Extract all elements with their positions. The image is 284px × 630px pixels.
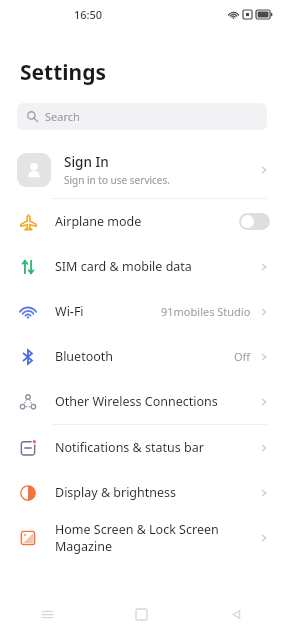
staticText: Airplane mode [55,213,239,230]
staticText: Settings [20,58,107,87]
staticText: Sign In [64,153,109,171]
button[interactable]: SIM card & mobile data [0,244,284,289]
button[interactable]: Other Wireless Connections [0,379,284,424]
button[interactable]: Notifications & status bar [0,425,284,470]
staticText: 91mobiles Studio [161,304,251,319]
staticText: Sign in to use services. [64,173,170,187]
staticText: Wi-Fi [55,303,161,320]
button[interactable]: Search [17,103,267,130]
staticText: Search [45,109,80,124]
staticText: SIM card & mobile data [55,258,258,275]
button[interactable]: Home [94,598,189,630]
button[interactable]: Airplane mode toggle [239,213,270,230]
button[interactable]: Airplane mode [0,199,284,244]
button[interactable]: Wi-Fi [0,289,284,334]
staticText: Home Screen & Lock Screen Magazine [55,521,258,554]
staticText: 16:50 [74,7,103,22]
button[interactable]: Display & brightness [0,470,284,515]
staticText: Off [234,349,251,364]
button[interactable]: Back [189,598,284,630]
button[interactable]: Recent apps [0,598,94,630]
staticText: Bluetooth [55,348,234,365]
staticText: Notifications & status bar [55,439,258,456]
button[interactable]: Sign In [0,142,284,198]
button[interactable]: Bluetooth [0,334,284,379]
staticText: Display & brightness [55,484,258,501]
staticText: Other Wireless Connections [55,393,258,410]
button[interactable]: Home Screen & Lock Screen Magazine [0,515,284,560]
